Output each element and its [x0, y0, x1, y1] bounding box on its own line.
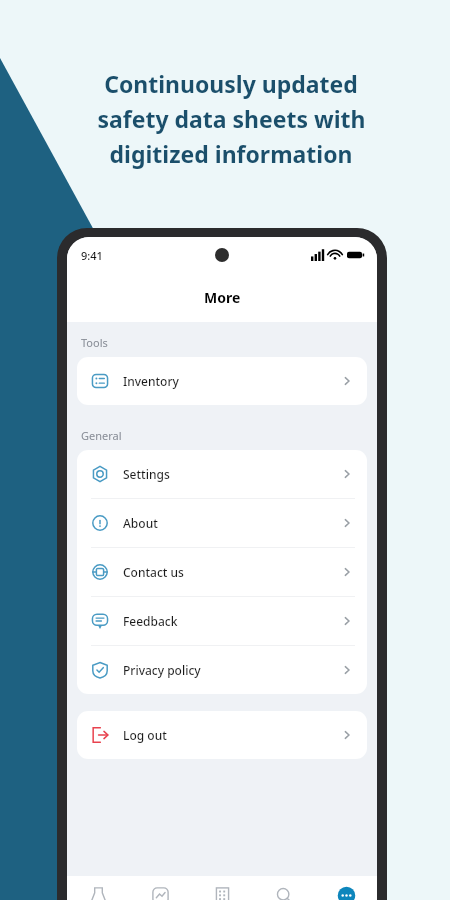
staticText: Privacy policy — [123, 662, 201, 678]
staticText: safety data sheets with — [97, 103, 366, 134]
button[interactable]: More — [315, 876, 377, 900]
staticText: Continuously updated — [104, 68, 358, 99]
staticText: Contact us — [123, 564, 184, 580]
staticText: digitized information — [109, 138, 353, 169]
staticText: More — [204, 288, 241, 307]
staticText: Feedback — [123, 613, 178, 629]
staticText: Tools — [81, 335, 108, 350]
button[interactable]: Activities — [129, 876, 191, 900]
button[interactable]: Feedback — [77, 597, 367, 645]
button[interactable]: Inventory — [77, 357, 367, 405]
button[interactable]: Settings — [77, 450, 367, 498]
staticText: Inventory — [123, 373, 179, 389]
button[interactable]: Departments — [191, 876, 253, 900]
button[interactable]: Contact us — [77, 548, 367, 596]
button[interactable]: About — [77, 499, 367, 547]
button[interactable]: Search — [253, 876, 315, 900]
staticText: 9:41 — [81, 248, 103, 263]
button[interactable]: Privacy policy — [77, 646, 367, 694]
button[interactable]: Log out — [77, 711, 367, 759]
staticText: Settings — [123, 466, 170, 482]
button[interactable]: Products — [67, 876, 129, 900]
staticText: Log out — [123, 727, 167, 743]
staticText: General — [81, 428, 122, 443]
staticText: About — [123, 515, 158, 531]
